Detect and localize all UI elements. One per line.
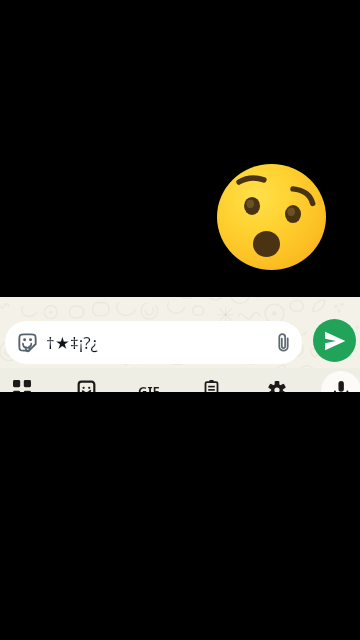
button[interactable]: Emoji [5,321,302,364]
button[interactable]: Clipboard [204,380,219,392]
button[interactable]: Attach [273,332,294,353]
button[interactable]: Recently used [13,380,31,392]
staticText: †★‡¡?¿ [46,331,98,354]
button[interactable]: Settings [268,381,286,392]
button[interactable]: GIF [138,382,164,392]
staticText: GIF [138,382,160,392]
button[interactable]: Voice input [333,380,349,392]
button[interactable]: Emoji [18,333,37,352]
button[interactable]: Send [313,319,356,362]
button[interactable]: Stickers [78,381,95,392]
